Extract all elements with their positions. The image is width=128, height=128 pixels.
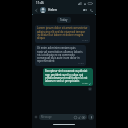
staticText: 11:44 (78, 62, 84, 65)
button[interactable]: Ut enim ad minim veniam quis nostrud exe… (35, 45, 86, 66)
staticText: 11:45 (82, 82, 88, 85)
staticText: Message (41, 115, 74, 119)
staticText: Lorem ipsum dolor sit amet consectetur a… (37, 26, 88, 39)
staticText: 11:46 (36, 1, 44, 5)
button[interactable]: Back (34, 8, 39, 13)
staticText: Ut enim ad minim veniam quis nostrud exe… (37, 46, 84, 62)
button[interactable]: Contact photo (40, 7, 46, 13)
button[interactable]: Video call (82, 7, 88, 13)
button[interactable]: Scroll to bottom (88, 87, 92, 91)
button[interactable]: Excepteur sint occaecat cupidatat non pr… (43, 68, 93, 86)
staticText: Helen (48, 8, 57, 12)
staticText: 11:44 (82, 39, 88, 42)
button[interactable]: Helen (48, 6, 82, 14)
button[interactable]: Attach (34, 115, 38, 119)
button[interactable]: Lorem ipsum dolor sit amet consectetur a… (35, 25, 90, 43)
button[interactable]: Voice call (88, 7, 94, 13)
button[interactable]: Record voice message (88, 114, 94, 120)
button[interactable]: Message (39, 114, 87, 120)
staticText: Excepteur sint occaecat cupidatat non pr… (45, 69, 91, 82)
staticText: Today (60, 18, 68, 22)
